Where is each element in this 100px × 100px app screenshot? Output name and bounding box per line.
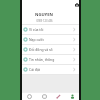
button[interactable]: Services: [37, 93, 51, 100]
staticText: Nạp cước: [29, 37, 45, 42]
staticText: Đổi đồng và số: [29, 47, 53, 52]
button[interactable]: Cài đặt: [22, 65, 79, 74]
button[interactable]: Tin nhắn, thông: [22, 55, 79, 64]
button[interactable]: Promotions: [51, 93, 65, 100]
button[interactable]: Home: [22, 93, 37, 100]
button[interactable]: Nạp cước: [22, 35, 79, 44]
staticText: Tin nhắn, thông: [29, 57, 55, 62]
staticText: Cài đặt: [29, 67, 41, 72]
button[interactable]: Account: [65, 93, 79, 100]
staticText: Ví của tôi: [29, 27, 44, 32]
button[interactable]: Đổi đồng và số: [22, 45, 79, 54]
staticText: NGUYEN: [35, 12, 53, 18]
button[interactable]: Camera: [74, 2, 80, 8]
button[interactable]: Ví của tôi: [22, 25, 79, 34]
staticText: 0909 123 456: [36, 19, 53, 23]
